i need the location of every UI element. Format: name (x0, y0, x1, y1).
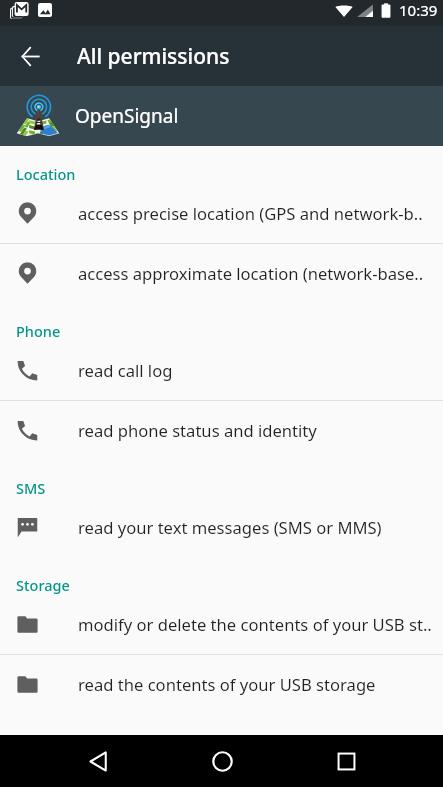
staticText: All permissions (77, 42, 230, 71)
staticText: OpenSignal (75, 103, 179, 129)
button[interactable]: read phone status and identity (0, 401, 443, 460)
button[interactable]: read your text messages (SMS or MMS) (0, 498, 443, 557)
staticText: modify or delete the contents of your US… (78, 613, 432, 636)
button[interactable]: Home (201, 740, 243, 782)
staticText: access precise location (GPS and network… (78, 202, 423, 225)
staticText: Storage (16, 575, 70, 595)
button[interactable]: read the contents of your USB storage (0, 655, 443, 714)
button[interactable]: Navigate up (14, 40, 46, 72)
button[interactable]: Recents (325, 740, 367, 782)
staticText: read your text messages (SMS or MMS) (78, 516, 382, 539)
button[interactable]: modify or delete the contents of your US… (0, 595, 443, 654)
staticText: access approximate location (network-bas… (78, 262, 424, 285)
staticText: read call log (78, 359, 173, 382)
button[interactable]: OpenSignal (0, 86, 443, 146)
staticText: Location (16, 164, 76, 184)
button[interactable]: read call log (0, 341, 443, 400)
staticText: read phone status and identity (78, 419, 317, 442)
staticText: 10:39 (399, 0, 438, 20)
button[interactable]: access approximate location (network-bas… (0, 244, 443, 303)
button[interactable]: Back (77, 740, 119, 782)
staticText: Phone (16, 321, 61, 341)
staticText: read the contents of your USB storage (78, 673, 376, 696)
button[interactable]: access precise location (GPS and network… (0, 184, 443, 243)
staticText: SMS (16, 478, 46, 498)
